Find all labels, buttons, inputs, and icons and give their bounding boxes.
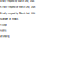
staticText: attending <box>0 35 9 38</box>
staticText: Kindly respond by March 2nd, 2026 <box>0 0 34 3</box>
staticText: Kindly respond by March 2nd, 2026 <box>0 11 35 15</box>
staticText: Number of meals <box>0 18 18 20</box>
staticText: Kindly respond by March 2nd, 2026 <box>0 6 35 8</box>
staticText: Name: <box>0 29 7 32</box>
staticText: Accept <box>0 23 7 26</box>
